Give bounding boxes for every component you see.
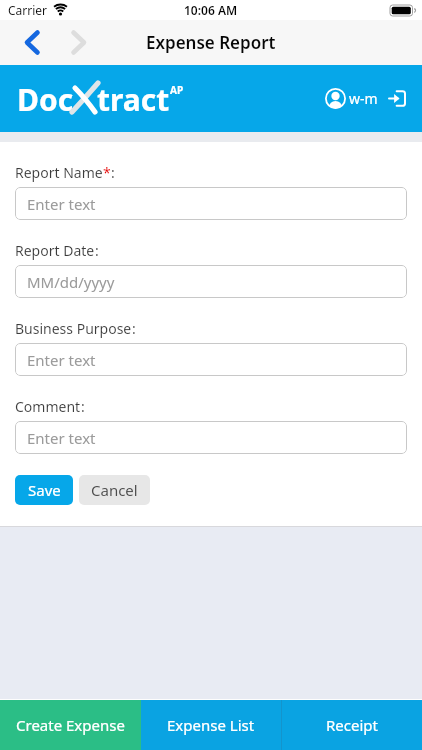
button[interactable]: w-m: [325, 88, 378, 109]
staticText: MM/dd/yyyy: [27, 272, 115, 292]
staticText: Enter text: [27, 428, 96, 448]
button[interactable]: Receipt: [282, 700, 422, 750]
staticText: Expense Report: [146, 31, 276, 54]
button[interactable]: Create Expense: [0, 700, 141, 750]
staticText: :: [132, 319, 136, 338]
staticText: tract: [97, 79, 170, 120]
staticText: AP: [170, 83, 184, 97]
staticText: Cancel: [91, 480, 138, 500]
staticText: Carrier: [8, 2, 48, 18]
button[interactable]: Save: [15, 475, 73, 505]
staticText: 10:06 AM: [184, 2, 238, 18]
button[interactable]: [72, 31, 86, 54]
button[interactable]: [389, 90, 406, 107]
staticText: Comment: [15, 397, 81, 416]
staticText: Business Purpose: [15, 319, 132, 338]
staticText: Save: [28, 480, 61, 500]
staticText: Receipt: [326, 715, 378, 735]
button[interactable]: Enter text: [15, 421, 407, 454]
staticText: w-m: [349, 89, 378, 108]
staticText: Enter text: [27, 194, 96, 214]
button[interactable]: Cancel: [79, 475, 150, 505]
staticText: :: [111, 163, 115, 182]
staticText: Enter text: [27, 350, 96, 370]
button[interactable]: [25, 31, 39, 54]
button[interactable]: Enter text: [15, 343, 407, 376]
staticText: Report Date: [15, 241, 95, 260]
staticText: Create Expense: [16, 715, 125, 735]
button[interactable]: Enter text: [15, 187, 407, 220]
staticText: *: [103, 163, 111, 182]
staticText: :: [95, 241, 99, 260]
staticText: :: [81, 397, 85, 416]
staticText: Report Name: [15, 163, 103, 182]
staticText: Doc: [17, 79, 74, 120]
staticText: Expense List: [167, 715, 255, 735]
button[interactable]: MM/dd/yyyy: [15, 265, 407, 298]
button[interactable]: Expense List: [141, 700, 281, 750]
